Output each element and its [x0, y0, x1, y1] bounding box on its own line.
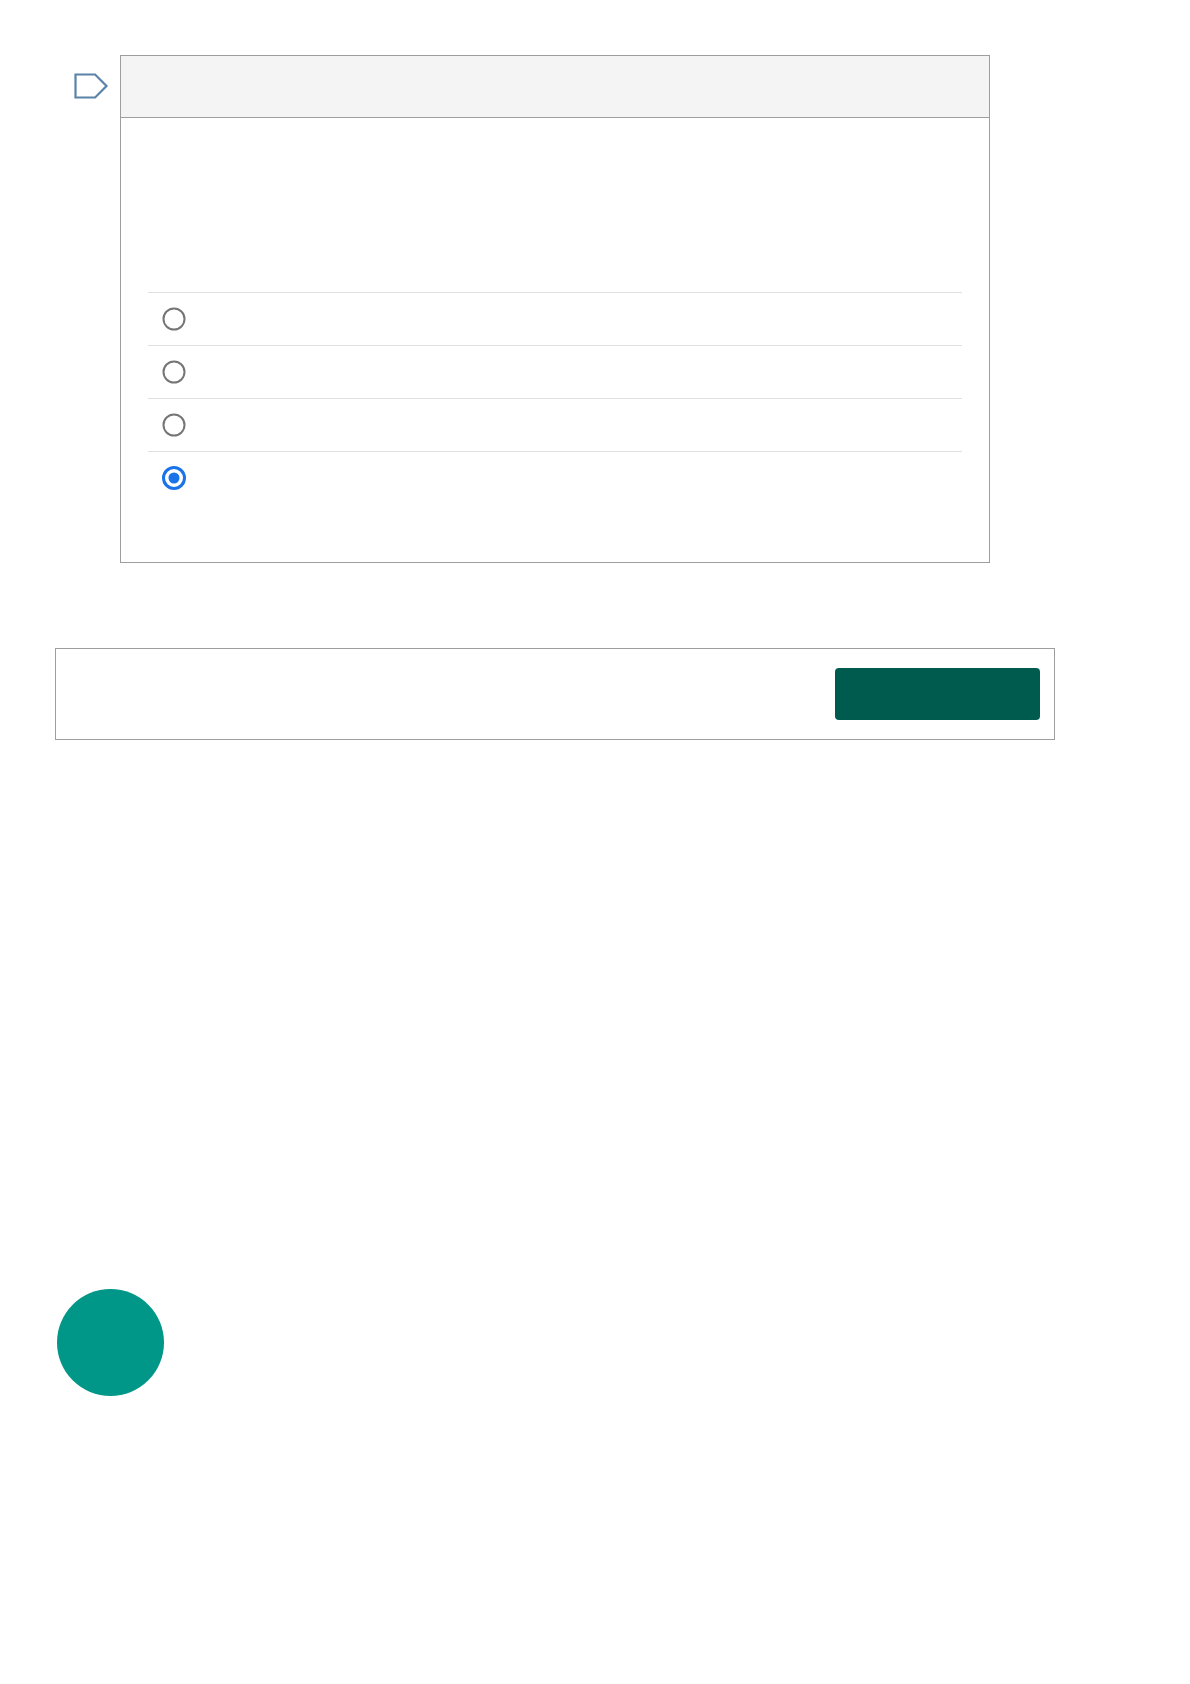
- button[interactable]: [148, 293, 962, 345]
- button[interactable]: Tag: [74, 71, 108, 101]
- button[interactable]: [148, 452, 962, 504]
- button[interactable]: [148, 399, 962, 451]
- button[interactable]: Help: [57, 1289, 164, 1396]
- button[interactable]: [120, 55, 990, 117]
- button[interactable]: [148, 346, 962, 398]
- button[interactable]: Submit: [835, 668, 1040, 720]
